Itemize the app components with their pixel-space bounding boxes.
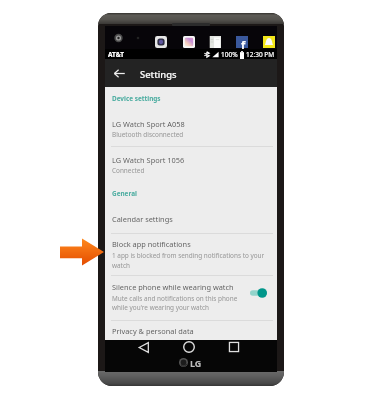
staticText: Bluetooth disconnected: [112, 130, 184, 139]
staticText: LG: [190, 357, 202, 367]
button[interactable]: Back: [107, 59, 131, 87]
button[interactable]: App shortcut: [209, 36, 221, 48]
staticText: Settings: [140, 68, 177, 81]
staticText: Silence phone while wearing watch: [112, 282, 234, 292]
button[interactable]: [105, 203, 277, 233]
button[interactable]: App shortcut: [183, 36, 195, 48]
staticText: Mute calls and notifications on this pho…: [112, 294, 238, 303]
staticText: LG Watch Sport A058: [112, 119, 185, 129]
button[interactable]: App shortcut: [155, 36, 167, 48]
staticText: Calendar settings: [112, 214, 173, 224]
button[interactable]: [105, 233, 277, 276]
button[interactable]: Home: [175, 333, 203, 361]
staticText: Privacy & personal data: [112, 326, 194, 336]
button[interactable]: Recent apps: [220, 333, 248, 361]
button[interactable]: [105, 276, 277, 320]
staticText: watch: [112, 261, 130, 270]
button[interactable]: App shortcut: [236, 36, 248, 48]
button[interactable]: Silence phone while wearing watch toggle: [246, 286, 270, 300]
button[interactable]: [105, 320, 277, 340]
staticText: 12:30 PM: [246, 50, 275, 59]
button[interactable]: Back: [130, 333, 158, 361]
button[interactable]: [105, 146, 277, 185]
button[interactable]: App shortcut: [263, 36, 275, 48]
staticText: Connected: [112, 166, 145, 175]
staticText: LG Watch Sport 1056: [112, 155, 185, 165]
staticText: 1 app is blocked from sending notificati…: [112, 251, 265, 260]
staticText: f: [241, 37, 246, 49]
staticText: 100%: [221, 50, 238, 59]
staticText: while you're wearing your watch: [112, 303, 209, 312]
staticText: Block app notifications: [112, 239, 191, 249]
button[interactable]: [105, 87, 277, 118]
staticText: Device settings: [112, 94, 161, 103]
staticText: General: [112, 189, 137, 198]
staticText: AT&T: [108, 50, 124, 59]
